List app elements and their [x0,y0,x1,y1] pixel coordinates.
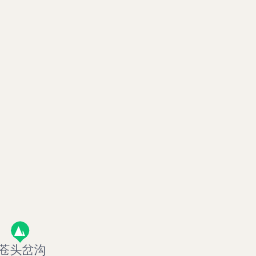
staticText: 苍头岔沟 [0,242,46,256]
button[interactable]: 苍头岔沟 [0,218,54,256]
